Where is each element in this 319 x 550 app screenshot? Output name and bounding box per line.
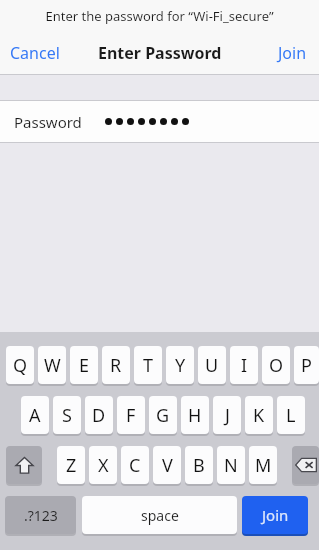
button[interactable]: G bbox=[149, 396, 177, 435]
button[interactable]: M bbox=[249, 446, 277, 485]
staticText: P bbox=[301, 353, 312, 378]
button[interactable]: X bbox=[89, 446, 117, 485]
button[interactable]: U bbox=[198, 346, 226, 385]
staticText: Enter Password bbox=[98, 42, 222, 64]
staticText: F bbox=[126, 403, 136, 428]
button[interactable]: A bbox=[21, 396, 49, 435]
staticText: M bbox=[255, 453, 272, 478]
staticText: K bbox=[253, 403, 265, 428]
button[interactable]: Z bbox=[57, 446, 85, 485]
staticText: L bbox=[286, 403, 296, 428]
button[interactable]: Shift bbox=[6, 446, 42, 485]
button[interactable]: I bbox=[230, 346, 258, 385]
button[interactable]: E bbox=[70, 346, 98, 385]
staticText: D bbox=[92, 403, 106, 428]
staticText: S bbox=[62, 403, 72, 428]
button[interactable]: Password bbox=[0, 101, 319, 142]
button[interactable]: O bbox=[262, 346, 290, 385]
staticText: space bbox=[141, 506, 179, 525]
button[interactable]: C bbox=[121, 446, 149, 485]
staticText: O bbox=[269, 353, 284, 378]
staticText: X bbox=[98, 453, 109, 478]
staticText: .?123 bbox=[24, 506, 58, 525]
button[interactable]: Join bbox=[242, 496, 308, 535]
staticText: J bbox=[225, 403, 230, 428]
button[interactable]: T bbox=[134, 346, 162, 385]
button[interactable]: R bbox=[102, 346, 130, 385]
staticText: Password bbox=[14, 112, 82, 132]
staticText: N bbox=[224, 453, 238, 478]
staticText: G bbox=[156, 403, 170, 428]
staticText: Join bbox=[262, 505, 289, 525]
staticText: B bbox=[193, 453, 205, 478]
staticText: H bbox=[188, 403, 202, 428]
button[interactable]: V bbox=[153, 446, 181, 485]
staticText: A bbox=[29, 403, 41, 428]
button[interactable]: .?123 bbox=[5, 496, 76, 535]
staticText: W bbox=[44, 353, 61, 378]
button[interactable]: K bbox=[245, 396, 273, 435]
staticText: Cancel bbox=[10, 42, 60, 64]
staticText: I bbox=[241, 353, 248, 378]
staticText: Enter the password for “Wi-Fi_secure” bbox=[45, 7, 274, 25]
button[interactable]: J bbox=[213, 396, 241, 435]
button[interactable]: D bbox=[85, 396, 113, 435]
button[interactable]: Y bbox=[166, 346, 194, 385]
button[interactable]: F bbox=[117, 396, 145, 435]
staticText: U bbox=[205, 353, 219, 378]
staticText: Y bbox=[175, 353, 186, 378]
staticText: E bbox=[79, 353, 90, 378]
button[interactable]: S bbox=[53, 396, 81, 435]
button[interactable]: B bbox=[185, 446, 213, 485]
staticText: Q bbox=[13, 353, 28, 378]
button[interactable]: P bbox=[294, 346, 319, 385]
button[interactable]: Cancel bbox=[0, 32, 70, 74]
button[interactable]: Join bbox=[266, 32, 319, 74]
button[interactable]: L bbox=[277, 396, 305, 435]
button[interactable]: Q bbox=[6, 346, 34, 385]
button[interactable]: space bbox=[82, 496, 237, 535]
staticText: Z bbox=[66, 453, 77, 478]
button[interactable]: Backspace bbox=[292, 446, 319, 485]
staticText: Join bbox=[278, 42, 307, 64]
staticText: C bbox=[129, 453, 141, 478]
staticText: T bbox=[143, 353, 154, 378]
button[interactable]: W bbox=[38, 346, 66, 385]
staticText: V bbox=[162, 453, 173, 478]
button[interactable]: N bbox=[217, 446, 245, 485]
button[interactable]: H bbox=[181, 396, 209, 435]
staticText: R bbox=[110, 353, 122, 378]
